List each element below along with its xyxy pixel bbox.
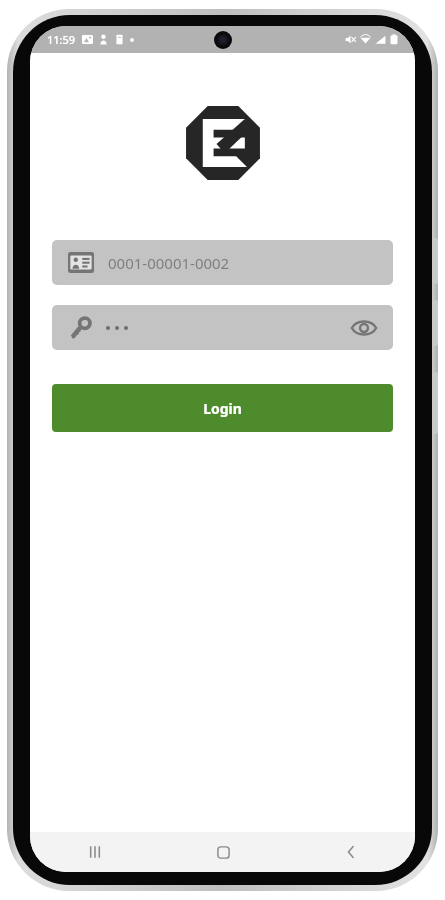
button[interactable]: Login — [52, 384, 393, 432]
button[interactable]: Home — [159, 832, 287, 872]
staticText: 0001-00001-0002 — [108, 253, 230, 273]
button[interactable]: Show password — [52, 305, 393, 350]
button[interactable]: Recent apps — [30, 832, 159, 872]
button[interactable]: Back — [287, 832, 415, 872]
button[interactable]: Show password — [347, 311, 381, 345]
button[interactable]: 0001-00001-0002 — [52, 240, 393, 285]
staticText: Login — [203, 399, 242, 418]
staticText: 11:59 — [47, 32, 76, 47]
